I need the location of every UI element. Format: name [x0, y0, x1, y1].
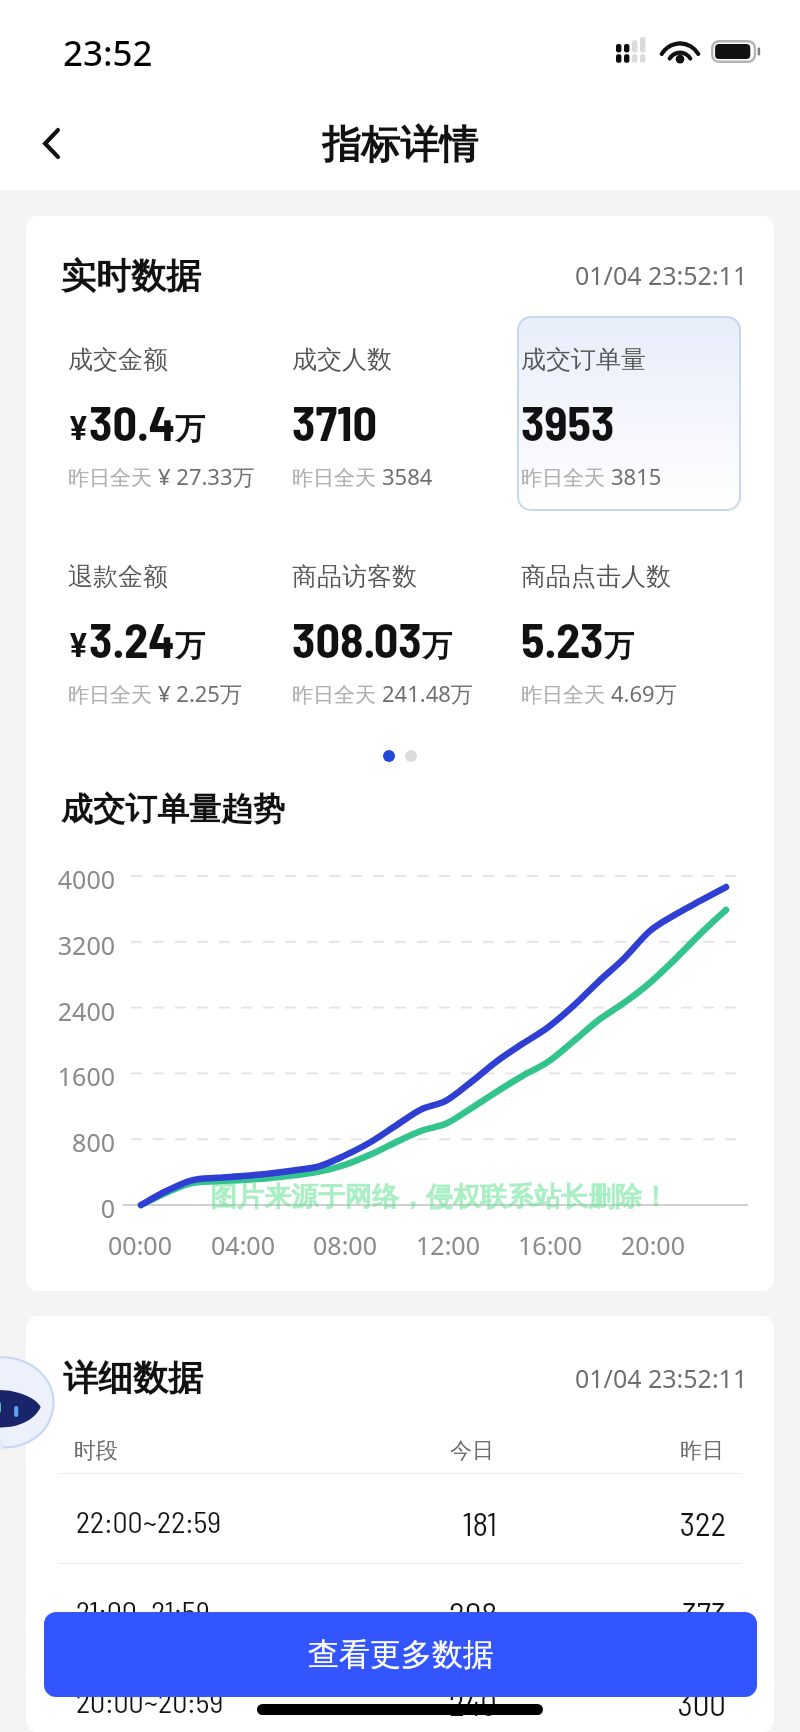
- staticText: 00:00: [90, 1228, 190, 1262]
- staticText: 21:00~21:59: [76, 1593, 210, 1629]
- staticText: 实时数据: [61, 254, 201, 298]
- staticText: 241.48万: [382, 678, 473, 708]
- staticText: 23:52: [63, 29, 153, 77]
- staticText: 16:00: [500, 1228, 600, 1262]
- staticText: 20:00: [603, 1228, 703, 1262]
- staticText: 昨日全天: [521, 682, 605, 708]
- staticText: 万: [175, 410, 205, 448]
- staticText: ¥ 2.25万: [158, 678, 242, 708]
- staticText: 成交人数: [292, 344, 392, 375]
- staticText: 22:00~22:59: [76, 1503, 222, 1539]
- staticText: 退款金额: [68, 561, 168, 592]
- staticText: 万: [175, 627, 205, 665]
- staticText: 昨日全天: [68, 682, 152, 708]
- staticText: 3584: [382, 461, 433, 491]
- staticText: 查看更多数据: [308, 1635, 494, 1674]
- staticText: 5.23: [521, 610, 604, 668]
- button[interactable]: [26, 1563, 774, 1653]
- button[interactable]: [280, 318, 504, 513]
- staticText: 800: [35, 1125, 115, 1159]
- staticText: 商品点击人数: [521, 561, 671, 592]
- button[interactable]: Page 1 of 2: [383, 750, 417, 762]
- button[interactable]: [509, 535, 733, 730]
- staticText: 图片来源于网络，侵权联系站长删除！: [210, 1180, 669, 1214]
- staticText: 3710: [292, 393, 377, 451]
- staticText: 4.69万: [611, 678, 677, 708]
- button[interactable]: [26, 1473, 774, 1563]
- button[interactable]: [26, 1653, 774, 1732]
- staticText: 指标详情: [322, 120, 478, 169]
- staticText: ¥: [68, 406, 89, 447]
- staticText: 208: [347, 1593, 497, 1633]
- staticText: 3953: [521, 393, 615, 451]
- staticText: 昨日全天: [292, 682, 376, 708]
- staticText: 昨日: [574, 1437, 724, 1465]
- staticText: 240: [347, 1683, 497, 1723]
- staticText: 30.4: [89, 393, 175, 451]
- button[interactable]: [56, 535, 280, 730]
- staticText: 181: [347, 1503, 497, 1543]
- staticText: 成交订单量趋势: [61, 789, 285, 829]
- staticText: 时段: [74, 1437, 118, 1465]
- staticText: 20:00~20:59: [76, 1683, 224, 1719]
- staticText: 3200: [35, 928, 115, 962]
- staticText: 300: [576, 1683, 726, 1723]
- staticText: 商品访客数: [292, 561, 417, 592]
- staticText: ¥: [68, 623, 89, 664]
- staticText: 昨日全天: [521, 465, 605, 491]
- button[interactable]: [56, 318, 280, 513]
- staticText: 373: [576, 1593, 726, 1633]
- staticText: 3815: [611, 461, 662, 491]
- button[interactable]: 查看更多数据: [44, 1612, 757, 1697]
- staticText: 详细数据: [63, 1356, 203, 1400]
- staticText: 308.03: [292, 610, 422, 668]
- button[interactable]: [280, 535, 504, 730]
- staticText: 成交订单量: [521, 344, 646, 375]
- staticText: 万: [422, 627, 452, 665]
- staticText: 昨日全天: [292, 465, 376, 491]
- staticText: 2400: [35, 994, 115, 1028]
- staticText: 322: [576, 1503, 726, 1543]
- staticText: 1600: [35, 1059, 115, 1093]
- staticText: 08:00: [295, 1228, 395, 1262]
- staticText: 今日: [344, 1437, 494, 1465]
- button[interactable]: [517, 316, 741, 511]
- button[interactable]: Back: [19, 111, 83, 175]
- staticText: 万: [604, 627, 634, 665]
- staticText: 昨日全天: [68, 465, 152, 491]
- staticText: 12:00: [398, 1228, 498, 1262]
- button[interactable]: [509, 318, 733, 513]
- staticText: 04:00: [193, 1228, 293, 1262]
- staticText: 01/04 23:52:11: [575, 258, 748, 292]
- staticText: 成交金额: [68, 344, 168, 375]
- staticText: 01/04 23:52:11: [575, 1361, 748, 1395]
- staticText: 3.24: [89, 610, 175, 668]
- staticText: 4000: [35, 862, 115, 896]
- staticText: 0: [35, 1191, 115, 1225]
- staticText: ¥ 27.33万: [158, 461, 255, 491]
